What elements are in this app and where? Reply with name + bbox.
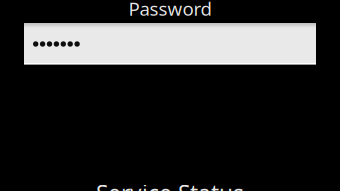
button[interactable]: Password	[24, 23, 316, 65]
staticText: Service Status	[96, 178, 244, 191]
staticText: Password	[128, 0, 211, 21]
